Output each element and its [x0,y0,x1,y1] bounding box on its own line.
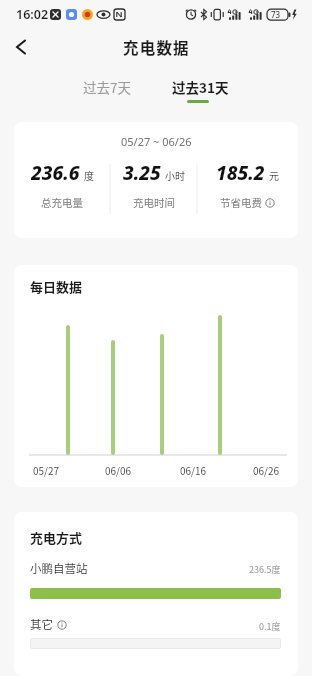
staticText: 185.2 [216,160,265,184]
staticText: 充电数据 [123,36,190,58]
staticText: 3.25 [123,160,161,184]
staticText: 06/06 [105,463,132,477]
button[interactable]: 过去31天 [165,74,235,100]
button[interactable]: 过去7天 [72,74,142,100]
staticText: 05/27 ~ 06/26 [121,134,192,149]
staticText: 节省电费 [220,195,262,210]
staticText: 度 [84,168,94,182]
staticText: 16:02 [16,6,49,23]
staticText: 总充电量 [41,195,83,210]
staticText: 过去31天 [172,77,229,97]
staticText: 充电时间 [133,195,175,210]
staticText: 236.5度 [249,563,281,576]
staticText: 06/26 [253,463,280,477]
staticText: 小时 [165,168,185,182]
staticText: 05/27 [33,463,60,477]
button[interactable] [6,32,36,62]
staticText: 充电方式 [30,528,83,547]
staticText: 其它 [30,616,53,633]
staticText: 元 [269,168,279,182]
staticText: 06/16 [180,463,207,477]
staticText: 236.6 [31,160,80,184]
staticText: 73 [271,9,281,20]
staticText: 过去7天 [83,77,131,97]
staticText: 0.1度 [259,620,281,633]
staticText: 小鹏自营站 [30,560,88,577]
staticText: 每日数据 [30,277,83,296]
